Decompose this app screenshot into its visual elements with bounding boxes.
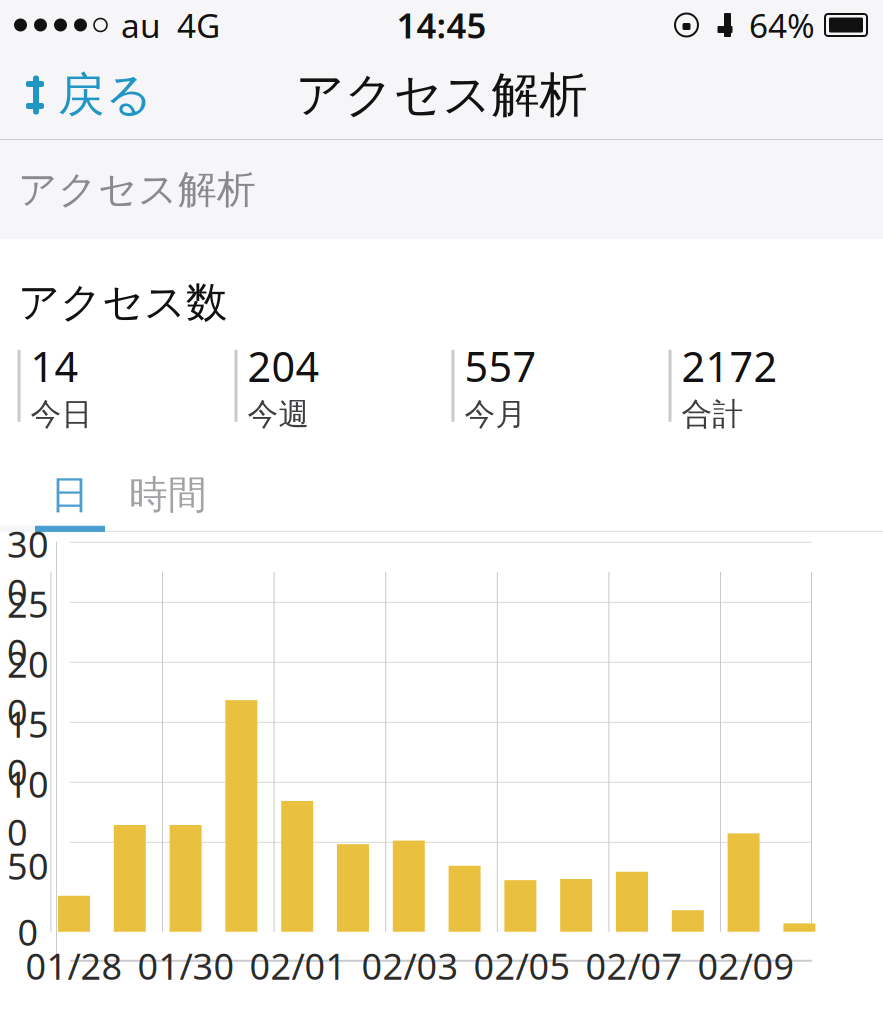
staticText: 02/07: [585, 942, 682, 990]
staticText: 今週: [247, 395, 309, 433]
staticText: 02/03: [361, 942, 458, 990]
staticText: 150: [7, 700, 49, 796]
staticText: 300: [7, 520, 49, 616]
staticText: 合計: [681, 395, 743, 433]
button[interactable]: 時間: [123, 472, 213, 518]
button[interactable]: 戻る: [0, 50, 169, 140]
staticText: 戻る: [58, 66, 153, 124]
staticText: 2172: [681, 338, 777, 393]
staticText: 100: [7, 760, 49, 856]
staticText: 0: [17, 908, 38, 956]
staticText: 64%: [749, 3, 815, 47]
staticText: 4G: [177, 3, 220, 47]
staticText: 時間: [129, 471, 207, 518]
staticText: 01/28: [25, 942, 122, 990]
staticText: 14:45: [396, 2, 486, 48]
staticText: 200: [7, 640, 49, 736]
staticText: 250: [7, 580, 49, 676]
staticText: 01/30: [137, 942, 234, 990]
staticText: 557: [464, 338, 536, 393]
staticText: アクセス解析: [18, 166, 256, 213]
staticText: 02/01: [249, 942, 346, 990]
staticText: 14: [30, 338, 78, 393]
staticText: 50: [7, 842, 49, 890]
staticText: 204: [247, 338, 319, 393]
staticText: 02/09: [697, 942, 794, 990]
staticText: au: [121, 3, 161, 47]
staticText: 今月: [464, 395, 526, 433]
staticText: アクセス解析: [295, 65, 587, 124]
staticText: 02/05: [473, 942, 570, 990]
staticText: アクセス数: [18, 277, 227, 328]
staticText: 日: [50, 471, 89, 518]
staticText: 今日: [30, 395, 92, 433]
button[interactable]: 日: [35, 472, 105, 518]
